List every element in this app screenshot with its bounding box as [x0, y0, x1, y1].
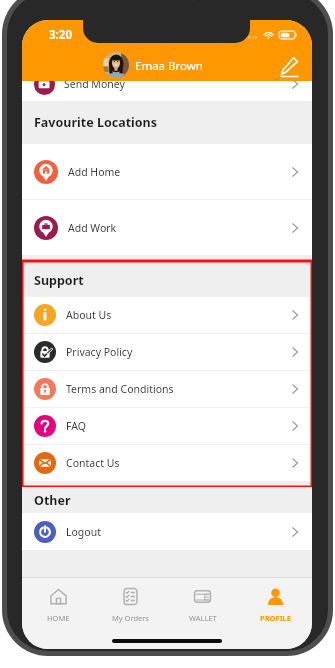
- button[interactable]: Terms and Conditions: [22, 371, 312, 407]
- staticText: PROFILE: [260, 613, 291, 623]
- button[interactable]: Send Money: [22, 81, 312, 101]
- button[interactable]: Add Work: [22, 200, 312, 255]
- button[interactable]: My Orders: [94, 578, 166, 638]
- button[interactable]: About Us: [22, 297, 312, 333]
- staticText: Support: [34, 272, 84, 289]
- staticText: Contact Us: [66, 456, 120, 470]
- button[interactable]: HOME: [22, 578, 94, 638]
- button[interactable]: FAQ: [22, 408, 312, 444]
- button[interactable]: PROFILE: [239, 578, 312, 638]
- staticText: 3:20: [49, 27, 72, 43]
- staticText: HOME: [47, 613, 70, 623]
- staticText: About Us: [66, 308, 112, 322]
- button[interactable]: WALLET: [166, 578, 239, 638]
- staticText: Favourite Locations: [34, 114, 158, 131]
- staticText: Add Work: [68, 221, 117, 235]
- button[interactable]: Logout: [22, 513, 312, 550]
- staticText: FAQ: [66, 419, 86, 433]
- staticText: WALLET: [189, 613, 217, 623]
- button[interactable]: Edit profile: [276, 53, 302, 79]
- staticText: My Orders: [112, 613, 149, 623]
- button[interactable]: Contact Us: [22, 445, 312, 481]
- button[interactable]: Privacy Policy: [22, 334, 312, 370]
- staticText: Logout: [66, 525, 101, 539]
- staticText: Emaa Brown: [135, 58, 203, 74]
- staticText: Privacy Policy: [66, 345, 133, 359]
- button[interactable]: Add Home: [22, 144, 312, 199]
- staticText: Send Money: [64, 81, 125, 91]
- staticText: Other: [34, 492, 71, 509]
- staticText: Terms and Conditions: [66, 382, 174, 396]
- staticText: Add Home: [68, 165, 121, 179]
